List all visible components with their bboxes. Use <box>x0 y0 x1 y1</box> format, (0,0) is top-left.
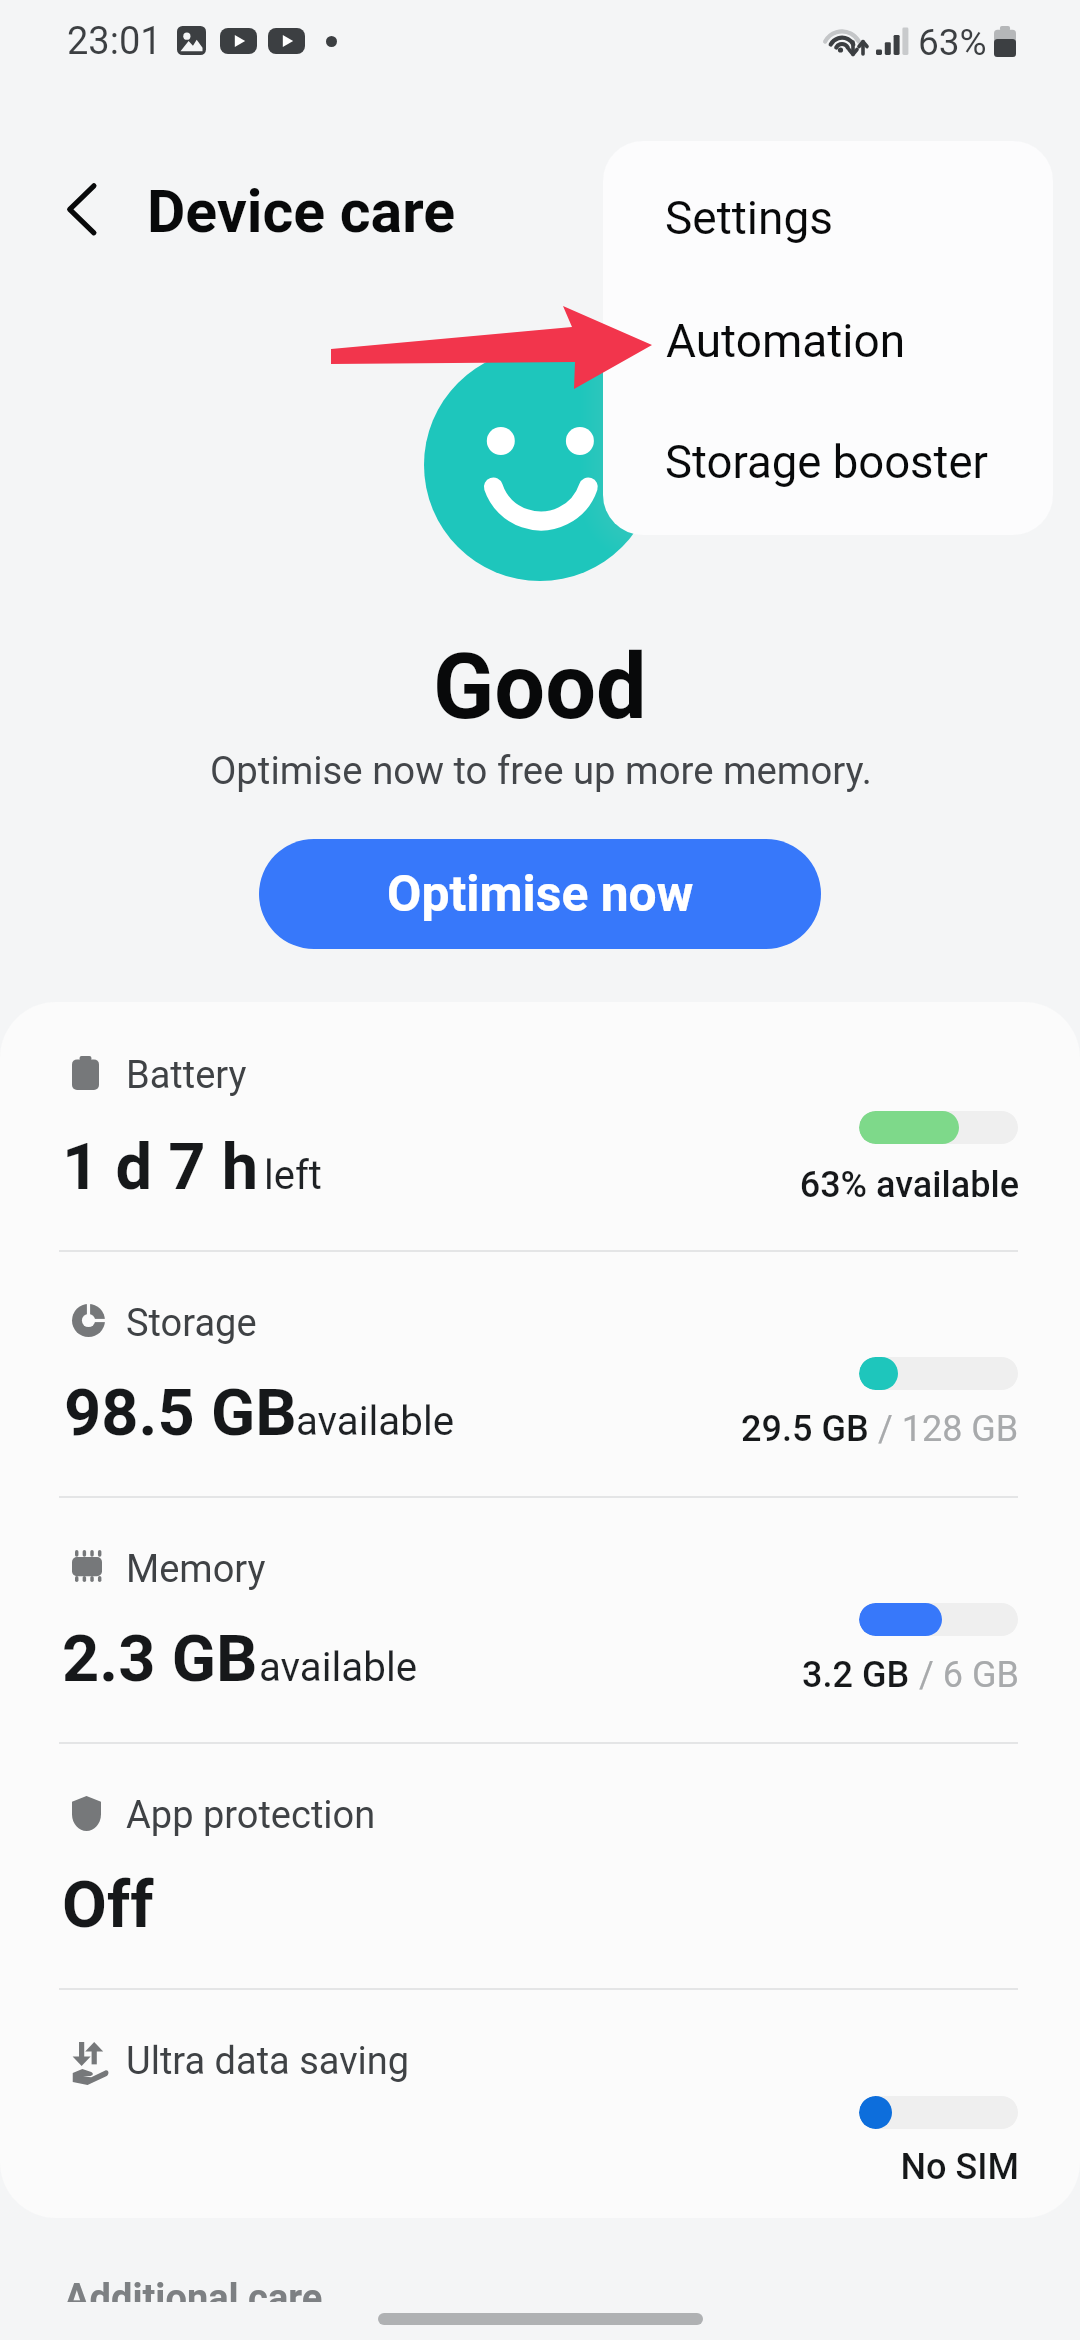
staticText: Ultra data saving <box>126 2039 410 2084</box>
button[interactable] <box>0 1988 1080 2218</box>
button[interactable]: Optimise now <box>259 839 821 949</box>
staticText: / 128 GB <box>869 1408 1019 1450</box>
staticText: App protection <box>126 1793 376 1838</box>
button[interactable] <box>603 141 1053 273</box>
button[interactable] <box>0 1496 1080 1742</box>
staticText: / 6 GB <box>910 1654 1019 1696</box>
button[interactable] <box>0 1742 1080 1988</box>
staticText: Device care <box>147 177 456 246</box>
button[interactable] <box>603 273 1053 394</box>
button[interactable] <box>0 1250 1080 1496</box>
staticText: Settings <box>665 191 833 245</box>
staticText: 98.5 GB <box>64 1375 297 1451</box>
staticText: 23:01 <box>67 19 162 64</box>
staticText: Storage booster <box>665 436 989 489</box>
staticText: Memory <box>126 1547 266 1592</box>
staticText: 63% <box>918 21 987 64</box>
button[interactable] <box>603 394 1053 535</box>
button[interactable] <box>0 1002 1080 1250</box>
staticText: 2.3 GB <box>62 1621 258 1697</box>
staticText: Optimise now <box>387 865 694 923</box>
staticText: No SIM <box>0 2146 1019 2188</box>
staticText: 1 d 7 h <box>62 1129 259 1205</box>
staticText: available <box>259 1644 418 1691</box>
staticText: 29.5 GB <box>741 1408 869 1450</box>
staticText: Optimise now to free up more memory. <box>210 748 872 793</box>
staticText: 3.2 GB <box>802 1654 910 1696</box>
staticText: Battery <box>126 1053 247 1098</box>
staticText: Additional care <box>64 2276 323 2302</box>
staticText: 63% available <box>0 1164 1019 1206</box>
staticText: Off <box>62 1867 154 1943</box>
button[interactable]: Back <box>36 174 128 248</box>
staticText: Automation <box>666 314 906 368</box>
staticText: Storage <box>126 1301 257 1346</box>
staticText: available <box>296 1398 455 1445</box>
staticText: Good <box>433 635 647 740</box>
staticText: left <box>264 1152 322 1199</box>
